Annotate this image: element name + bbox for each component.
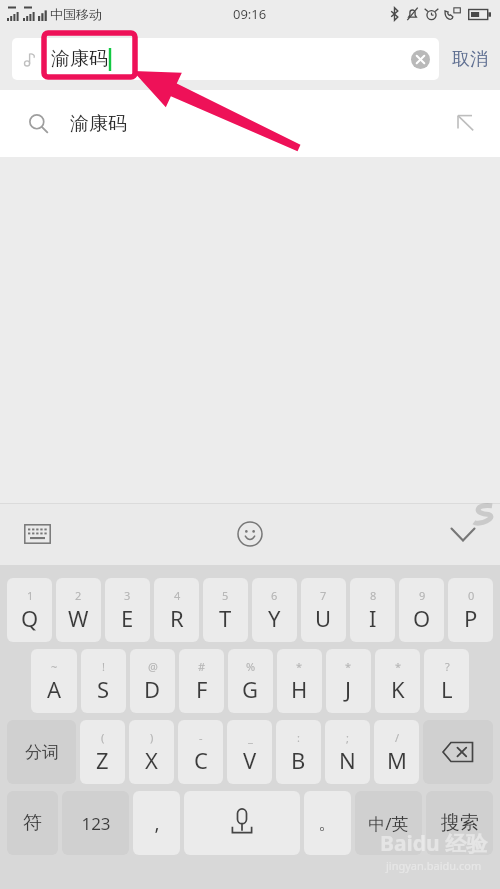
button[interactable]: 搜索: [426, 791, 493, 855]
button[interactable]: /: [374, 720, 419, 784]
staticText: F: [196, 674, 208, 704]
staticText: R: [170, 603, 184, 633]
button[interactable]: *: [326, 649, 371, 713]
button[interactable]: %: [228, 649, 273, 713]
staticText: X: [145, 745, 158, 775]
button[interactable]: 3: [105, 578, 150, 642]
button[interactable]: ,: [133, 791, 180, 855]
button[interactable]: 取消: [439, 38, 488, 80]
button[interactable]: Backspace: [423, 720, 493, 784]
staticText: ?: [445, 659, 450, 674]
staticText: V: [243, 745, 257, 775]
staticText: S: [97, 674, 110, 704]
staticText: _: [248, 730, 253, 745]
staticText: *: [395, 659, 402, 674]
staticText: ,: [154, 810, 160, 836]
button[interactable]: *: [277, 649, 322, 713]
staticText: 取消: [452, 48, 488, 71]
staticText: N: [339, 745, 356, 775]
staticText: Y: [268, 603, 281, 633]
button[interactable]: 4: [154, 578, 199, 642]
button[interactable]: Voice input: [184, 791, 300, 855]
button[interactable]: ;: [325, 720, 370, 784]
button[interactable]: *: [375, 649, 420, 713]
staticText: 9: [419, 588, 426, 603]
button[interactable]: 9: [399, 578, 444, 642]
button[interactable]: 2: [56, 578, 101, 642]
staticText: 7: [320, 588, 327, 603]
button[interactable]: @: [130, 649, 175, 713]
staticText: 中/英: [368, 812, 409, 835]
button[interactable]: 5: [203, 578, 248, 642]
staticText: H: [291, 674, 308, 704]
button[interactable]: ?: [424, 649, 469, 713]
staticText: *: [296, 659, 303, 674]
staticText: P: [464, 603, 478, 633]
staticText: 6: [271, 588, 278, 603]
staticText: :: [297, 730, 300, 745]
staticText: W: [68, 603, 89, 633]
button[interactable]: 0: [448, 578, 493, 642]
button[interactable]: 6: [252, 578, 297, 642]
staticText: Z: [96, 745, 109, 775]
button[interactable]: Emoji: [227, 511, 273, 557]
staticText: D: [144, 674, 161, 704]
button[interactable]: !: [81, 649, 126, 713]
staticText: 4: [174, 588, 181, 603]
button[interactable]: ): [129, 720, 174, 784]
staticText: O: [413, 603, 431, 633]
button[interactable]: 1: [7, 578, 52, 642]
staticText: -: [199, 730, 203, 745]
staticText: 渝康码: [70, 112, 127, 136]
staticText: G: [242, 674, 259, 704]
button[interactable]: Keyboard layout: [14, 511, 60, 557]
button[interactable]: :: [276, 720, 321, 784]
staticText: U: [315, 603, 332, 633]
button[interactable]: 符: [7, 791, 58, 855]
staticText: ): [150, 730, 154, 745]
staticText: 5: [222, 588, 229, 603]
button[interactable]: ~: [31, 649, 77, 713]
staticText: 1: [27, 588, 34, 603]
staticText: !: [102, 659, 105, 674]
button[interactable]: Clear text: [403, 42, 437, 76]
button[interactable]: 渝康码: [12, 38, 439, 80]
staticText: 中国移动: [50, 6, 102, 22]
button[interactable]: (: [80, 720, 125, 784]
staticText: ;: [346, 730, 349, 745]
staticText: @: [148, 659, 158, 674]
staticText: jingyan.baidu.com: [386, 858, 482, 873]
staticText: #: [198, 659, 206, 674]
staticText: 8: [370, 588, 377, 603]
staticText: ~: [51, 659, 58, 674]
button[interactable]: -: [178, 720, 223, 784]
staticText: Q: [21, 603, 39, 633]
staticText: 渝康码: [51, 47, 108, 71]
staticText: 3: [124, 588, 131, 603]
button[interactable]: 中/英: [355, 791, 422, 855]
staticText: 符: [23, 811, 42, 835]
staticText: A: [47, 674, 62, 704]
button[interactable]: 。: [304, 791, 351, 855]
button[interactable]: Hide keyboard: [440, 511, 486, 557]
staticText: 2: [75, 588, 82, 603]
staticText: J: [345, 674, 352, 704]
staticText: 。: [318, 811, 337, 835]
staticText: 0: [468, 588, 475, 603]
staticText: %: [246, 659, 256, 674]
staticText: E: [121, 603, 134, 633]
staticText: 分词: [25, 742, 59, 763]
button[interactable]: #: [179, 649, 224, 713]
staticText: 123: [81, 812, 111, 835]
button[interactable]: 分词: [7, 720, 76, 784]
staticText: /: [395, 730, 400, 745]
staticText: B: [291, 745, 306, 775]
button[interactable]: 7: [301, 578, 346, 642]
button[interactable]: 渝康码: [0, 90, 500, 157]
button[interactable]: Fill in search box: [444, 102, 488, 146]
button[interactable]: _: [227, 720, 272, 784]
button[interactable]: 123: [62, 791, 129, 855]
staticText: M: [387, 745, 407, 775]
staticText: K: [391, 674, 405, 704]
button[interactable]: 8: [350, 578, 395, 642]
